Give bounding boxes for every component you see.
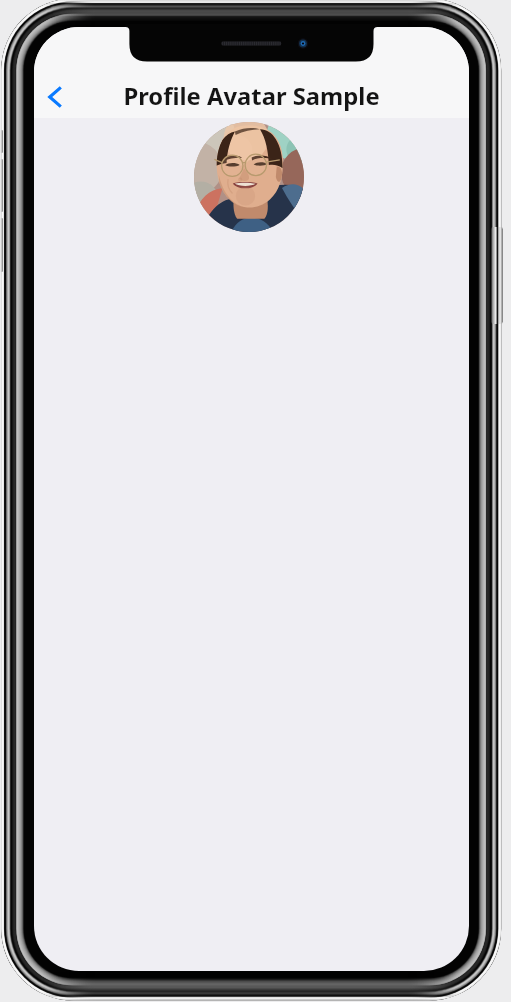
staticText: Profile Avatar Sample bbox=[123, 80, 380, 112]
button[interactable]: Profile avatar bbox=[194, 122, 304, 232]
button[interactable]: Back bbox=[36, 77, 76, 117]
